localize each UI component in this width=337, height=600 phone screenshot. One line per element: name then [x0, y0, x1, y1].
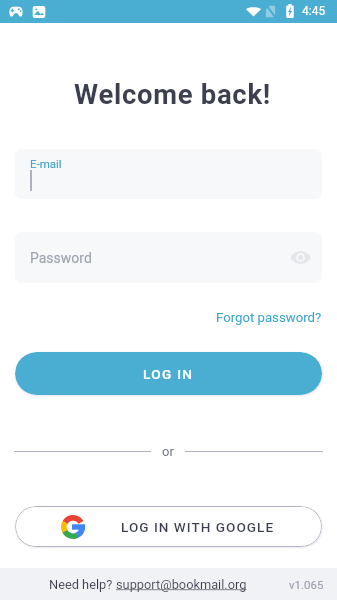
staticText: E-mail	[30, 157, 62, 170]
staticText: Password	[30, 250, 92, 266]
staticText: or	[162, 444, 174, 459]
staticText: Need help?	[49, 577, 116, 592]
button[interactable]: LOG IN	[15, 352, 322, 395]
staticText: LOG IN WITH GOOGLE	[121, 519, 275, 535]
button[interactable]: Password	[15, 232, 322, 283]
button[interactable]: Forgot password?	[216, 305, 337, 330]
staticText: v1.065	[289, 578, 324, 591]
button[interactable]: support@bookmail.org	[116, 577, 247, 592]
button[interactable]: E-mail	[15, 149, 322, 199]
staticText: Welcome back!	[4, 78, 337, 110]
staticText: LOG IN	[143, 366, 194, 382]
button[interactable]: LOG IN WITH GOOGLE	[15, 506, 322, 547]
staticText: 4:45	[302, 4, 326, 18]
button[interactable]: Show password	[283, 240, 317, 274]
